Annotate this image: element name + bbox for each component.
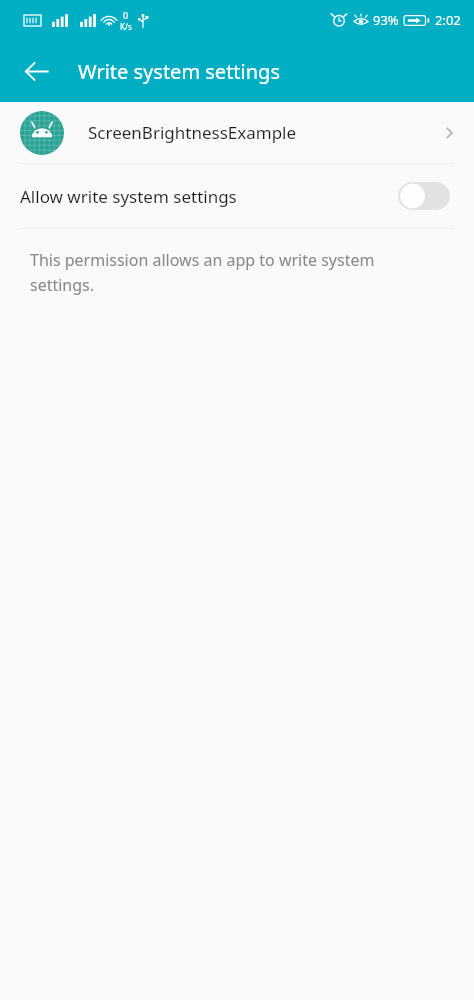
button[interactable]: Allow write system settings	[0, 164, 474, 228]
staticText: 2:02	[435, 11, 461, 29]
staticText: 0	[123, 9, 129, 21]
staticText: Write system settings	[78, 58, 280, 85]
staticText: ScreenBrightnessExample	[88, 121, 297, 144]
button[interactable]: Navigate up	[12, 47, 60, 95]
staticText: K/s	[120, 21, 132, 32]
staticText: This permission allows an app to write s…	[30, 249, 414, 295]
button[interactable]: ScreenBrightnessExample	[0, 102, 474, 163]
staticText: Allow write system settings	[20, 185, 237, 208]
staticText: 93%	[373, 11, 399, 29]
